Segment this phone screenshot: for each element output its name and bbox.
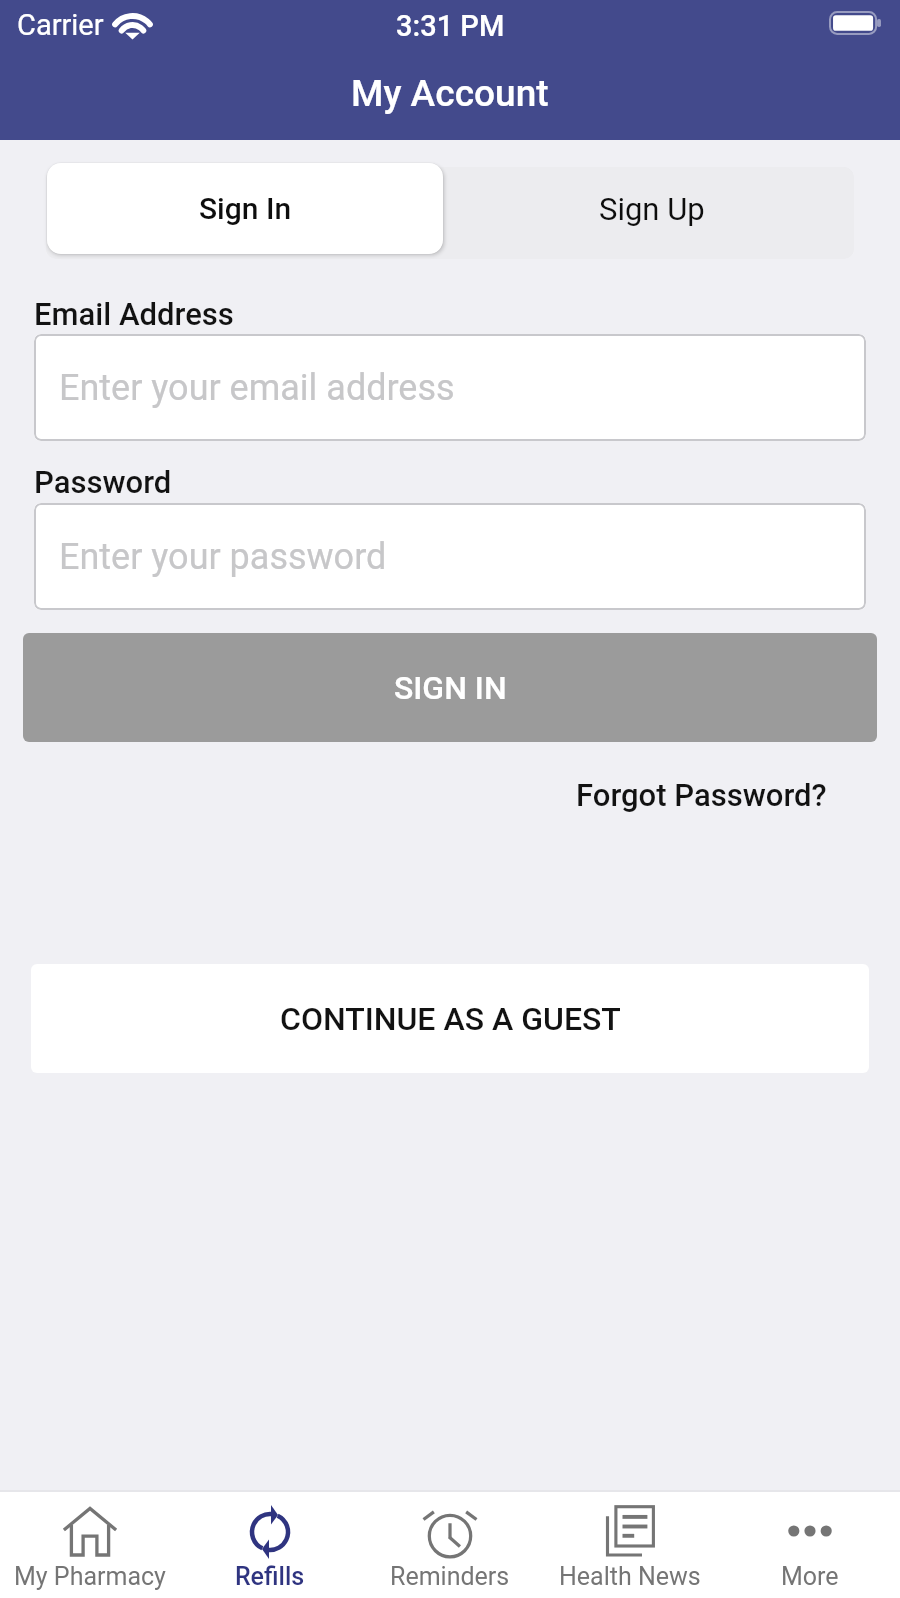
button[interactable]: Enter your email address <box>34 334 866 441</box>
staticText: Health News <box>559 1562 701 1591</box>
button[interactable]: Forgot Password? <box>558 771 845 819</box>
staticText: More <box>781 1562 839 1591</box>
button[interactable]: Health News <box>540 1492 720 1598</box>
button[interactable]: Sign Up <box>450 163 854 254</box>
button[interactable]: My Pharmacy <box>0 1492 180 1598</box>
staticText: Refills <box>235 1562 305 1591</box>
button[interactable]: Enter your password <box>34 503 866 610</box>
staticText: Password <box>34 464 172 500</box>
button[interactable]: Sign In <box>47 163 443 254</box>
button[interactable]: Refills <box>180 1492 360 1598</box>
staticText: My Pharmacy <box>14 1562 166 1591</box>
staticText: SIGN IN <box>394 669 507 707</box>
staticText: 3:31 PM <box>396 9 505 43</box>
staticText: Forgot Password? <box>576 777 827 813</box>
staticText: Enter your password <box>59 536 387 578</box>
button[interactable]: CONTINUE AS A GUEST <box>31 964 869 1073</box>
staticText: Sign Up <box>599 191 705 227</box>
staticText: Reminders <box>390 1562 510 1591</box>
staticText: Carrier <box>17 8 104 42</box>
staticText: Sign In <box>199 191 292 226</box>
button[interactable]: More <box>720 1492 900 1598</box>
button[interactable]: SIGN IN <box>23 633 877 742</box>
staticText: CONTINUE AS A GUEST <box>280 1000 621 1038</box>
staticText: Email Address <box>34 296 234 332</box>
staticText: Enter your email address <box>59 367 455 409</box>
button[interactable]: Reminders <box>360 1492 540 1598</box>
staticText: My Account <box>351 72 549 115</box>
